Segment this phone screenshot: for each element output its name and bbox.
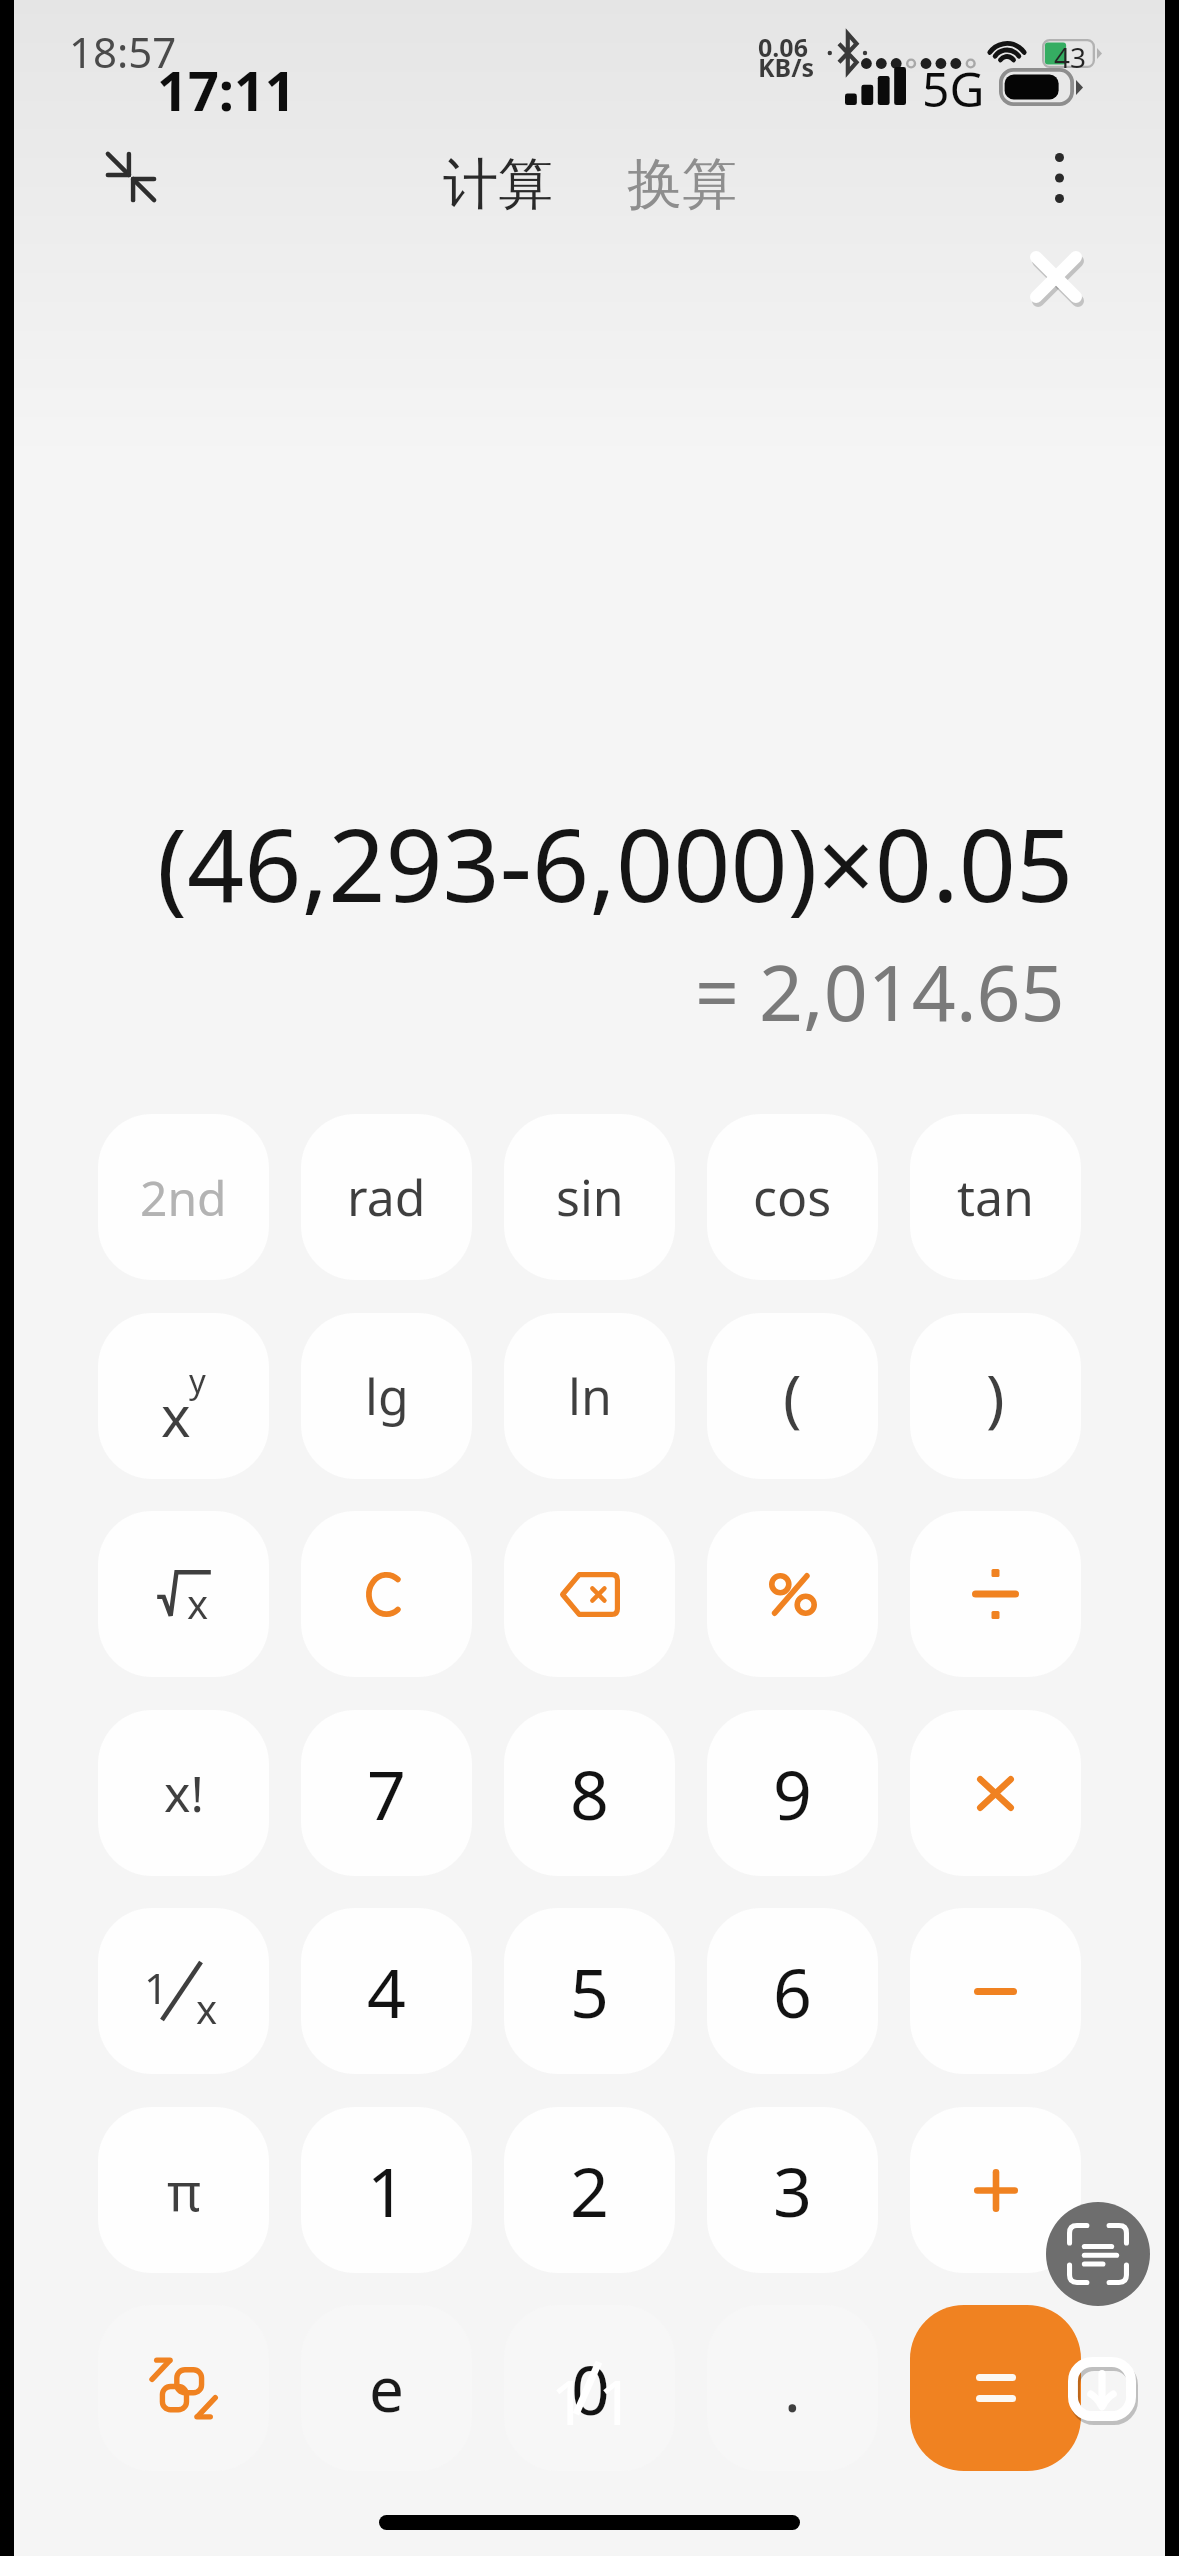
staticText: 5 bbox=[570, 1945, 609, 2038]
staticText: 2nd bbox=[140, 1165, 227, 1230]
staticText: 18:57 bbox=[69, 23, 177, 80]
button[interactable]: ln bbox=[504, 1313, 675, 1479]
button[interactable] bbox=[910, 2305, 1081, 2471]
staticText: lg bbox=[365, 1362, 409, 1430]
staticText: 4 bbox=[367, 1945, 406, 2038]
staticText: (46,293-6,000)×0.05 bbox=[157, 795, 1074, 931]
staticText: rad bbox=[347, 1163, 426, 1231]
button[interactable]: e bbox=[301, 2305, 472, 2471]
staticText: . bbox=[784, 2346, 801, 2430]
staticText: 6 bbox=[773, 1945, 812, 2038]
staticText: 1 bbox=[144, 1959, 169, 2016]
staticText: 9 bbox=[773, 1747, 812, 1840]
staticText: x! bbox=[164, 1759, 204, 1827]
button[interactable] bbox=[301, 1511, 472, 1677]
button[interactable] bbox=[707, 1511, 878, 1677]
staticText: x bbox=[187, 1576, 209, 1624]
staticText: y bbox=[189, 1358, 206, 1403]
button[interactable]: 计算 bbox=[439, 150, 557, 219]
button[interactable]: 换算 bbox=[623, 150, 741, 219]
button[interactable] bbox=[98, 2305, 269, 2471]
button[interactable]: Download bbox=[1068, 2357, 1136, 2421]
staticText: 0.06 bbox=[758, 30, 808, 64]
staticText: ( bbox=[783, 1354, 802, 1438]
staticText: x bbox=[196, 1981, 218, 2035]
staticText: 换算 bbox=[627, 150, 737, 219]
button[interactable] bbox=[910, 1908, 1081, 2074]
staticText: 3 bbox=[773, 2144, 812, 2237]
staticText: 5G bbox=[922, 56, 985, 121]
button[interactable]: rad bbox=[301, 1114, 472, 1280]
button[interactable] bbox=[910, 1710, 1081, 1876]
button[interactable]: More options bbox=[1015, 134, 1103, 222]
staticText: 1 bbox=[551, 2359, 587, 2443]
staticText: π bbox=[167, 2155, 201, 2226]
staticText: 1 bbox=[598, 2359, 634, 2443]
button[interactable] bbox=[910, 1511, 1081, 1677]
button[interactable]: 0 bbox=[504, 2305, 675, 2471]
staticText: 8 bbox=[570, 1747, 609, 1840]
staticText: e bbox=[369, 2346, 404, 2430]
button[interactable]: cos bbox=[707, 1114, 878, 1280]
staticText: 2 bbox=[570, 2144, 609, 2237]
button[interactable]: 7 bbox=[301, 1710, 472, 1876]
button[interactable]: 4 bbox=[301, 1908, 472, 2074]
button[interactable]: 1 bbox=[301, 2107, 472, 2273]
button[interactable]: Scan bbox=[1046, 2202, 1150, 2306]
button[interactable]: 8 bbox=[504, 1710, 675, 1876]
button[interactable]: x! bbox=[98, 1710, 269, 1876]
button[interactable]: Close bbox=[1012, 233, 1100, 321]
button[interactable]: ( bbox=[707, 1313, 878, 1479]
staticText: ln bbox=[568, 1362, 612, 1430]
button[interactable]: π bbox=[98, 2107, 269, 2273]
button[interactable]: 6 bbox=[707, 1908, 878, 2074]
button[interactable]: 2nd bbox=[98, 1114, 269, 1280]
button[interactable]: x bbox=[98, 1313, 269, 1479]
button[interactable]: tan bbox=[910, 1114, 1081, 1280]
staticText: x bbox=[161, 1377, 191, 1453]
button[interactable]: 5 bbox=[504, 1908, 675, 2074]
button[interactable] bbox=[910, 2107, 1081, 2273]
button[interactable]: x bbox=[98, 1511, 269, 1677]
staticText: 17:11 bbox=[157, 53, 296, 127]
staticText: 43 bbox=[1054, 38, 1087, 76]
button[interactable]: 1 bbox=[98, 1908, 269, 2074]
staticText: sin bbox=[556, 1163, 624, 1231]
staticText: tan bbox=[957, 1163, 1034, 1231]
staticText: KB/s bbox=[758, 50, 815, 84]
button[interactable]: lg bbox=[301, 1313, 472, 1479]
staticText: ) bbox=[986, 1354, 1005, 1438]
button[interactable]: . bbox=[707, 2305, 878, 2471]
button[interactable] bbox=[504, 1511, 675, 1677]
button[interactable]: 9 bbox=[707, 1710, 878, 1876]
button[interactable]: 3 bbox=[707, 2107, 878, 2273]
button[interactable]: Collapse bbox=[87, 133, 175, 221]
staticText: = 2,014.65 bbox=[695, 939, 1065, 1044]
button[interactable]: 2 bbox=[504, 2107, 675, 2273]
staticText: cos bbox=[753, 1163, 832, 1231]
staticText: 0 bbox=[571, 2342, 610, 2435]
staticText: 1 bbox=[367, 2144, 406, 2237]
staticText: 计算 bbox=[443, 150, 553, 219]
button[interactable]: sin bbox=[504, 1114, 675, 1280]
button[interactable]: ) bbox=[910, 1313, 1081, 1479]
staticText: 7 bbox=[367, 1747, 406, 1840]
